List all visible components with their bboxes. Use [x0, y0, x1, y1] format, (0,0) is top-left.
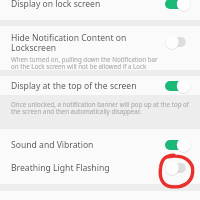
- staticText: Sound and Vibration: [11, 139, 165, 151]
- staticText: Hide Notification Content on Lockscreen: [11, 32, 163, 53]
- staticText: When turned on, pulling down the Notific…: [11, 55, 159, 70]
- button[interactable]: Hide Notification Content on Lockscreen: [0, 26, 200, 70]
- staticText: Once unlocked, a notification banner wil…: [11, 100, 190, 116]
- button[interactable]: Breathing Light Flashing: [0, 156, 200, 179]
- staticText: Breathing Light Flashing: [11, 162, 165, 174]
- staticText: Display on lock screen: [11, 0, 165, 10]
- button[interactable]: Hide Notification Content on Lockscreen: [165, 34, 191, 50]
- button[interactable]: Display at the top of the screen: [0, 76, 200, 95]
- button[interactable]: Sound and Vibration: [165, 137, 191, 153]
- button[interactable]: Display at the top of the screen: [165, 78, 191, 94]
- button[interactable]: Sound and Vibration: [0, 133, 200, 156]
- button[interactable]: Display on lock screen: [0, 0, 200, 14]
- button[interactable]: Breathing Light Flashing: [165, 160, 191, 176]
- staticText: Display at the top of the screen: [11, 80, 165, 92]
- button[interactable]: Display on lock screen: [165, 0, 191, 12]
